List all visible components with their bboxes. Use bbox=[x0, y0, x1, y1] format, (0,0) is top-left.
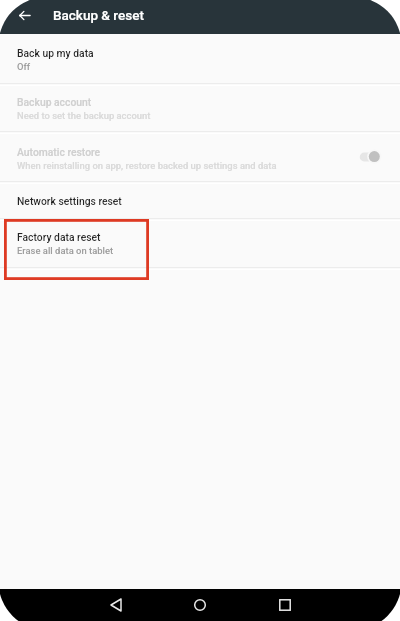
button[interactable]: Home bbox=[185, 590, 215, 620]
staticText: Backup account bbox=[17, 96, 92, 108]
staticText: Factory data reset bbox=[17, 231, 101, 243]
button[interactable]: Back bbox=[101, 590, 131, 620]
button[interactable]: Navigate up bbox=[13, 3, 37, 27]
staticText: When reinstalling on app, restore backed… bbox=[17, 160, 277, 171]
button[interactable]: Recent apps bbox=[270, 590, 300, 620]
staticText: Back up my data bbox=[17, 47, 94, 59]
staticText: Automatic restore bbox=[17, 146, 101, 158]
button[interactable]: Network settings reset bbox=[0, 182, 400, 219]
button[interactable]: Backup account bbox=[0, 84, 400, 132]
button[interactable]: Automatic restore bbox=[0, 132, 400, 182]
button[interactable]: Automatic restore toggle bbox=[355, 147, 383, 167]
staticText: Network settings reset bbox=[17, 195, 122, 207]
button[interactable]: Back up my data bbox=[0, 34, 400, 84]
staticText: Need to set the backup account bbox=[17, 110, 151, 121]
staticText: Backup & reset bbox=[53, 7, 144, 23]
staticText: Erase all data on tablet bbox=[17, 245, 114, 256]
button[interactable]: Factory data reset bbox=[0, 219, 400, 268]
staticText: Off bbox=[17, 61, 31, 72]
